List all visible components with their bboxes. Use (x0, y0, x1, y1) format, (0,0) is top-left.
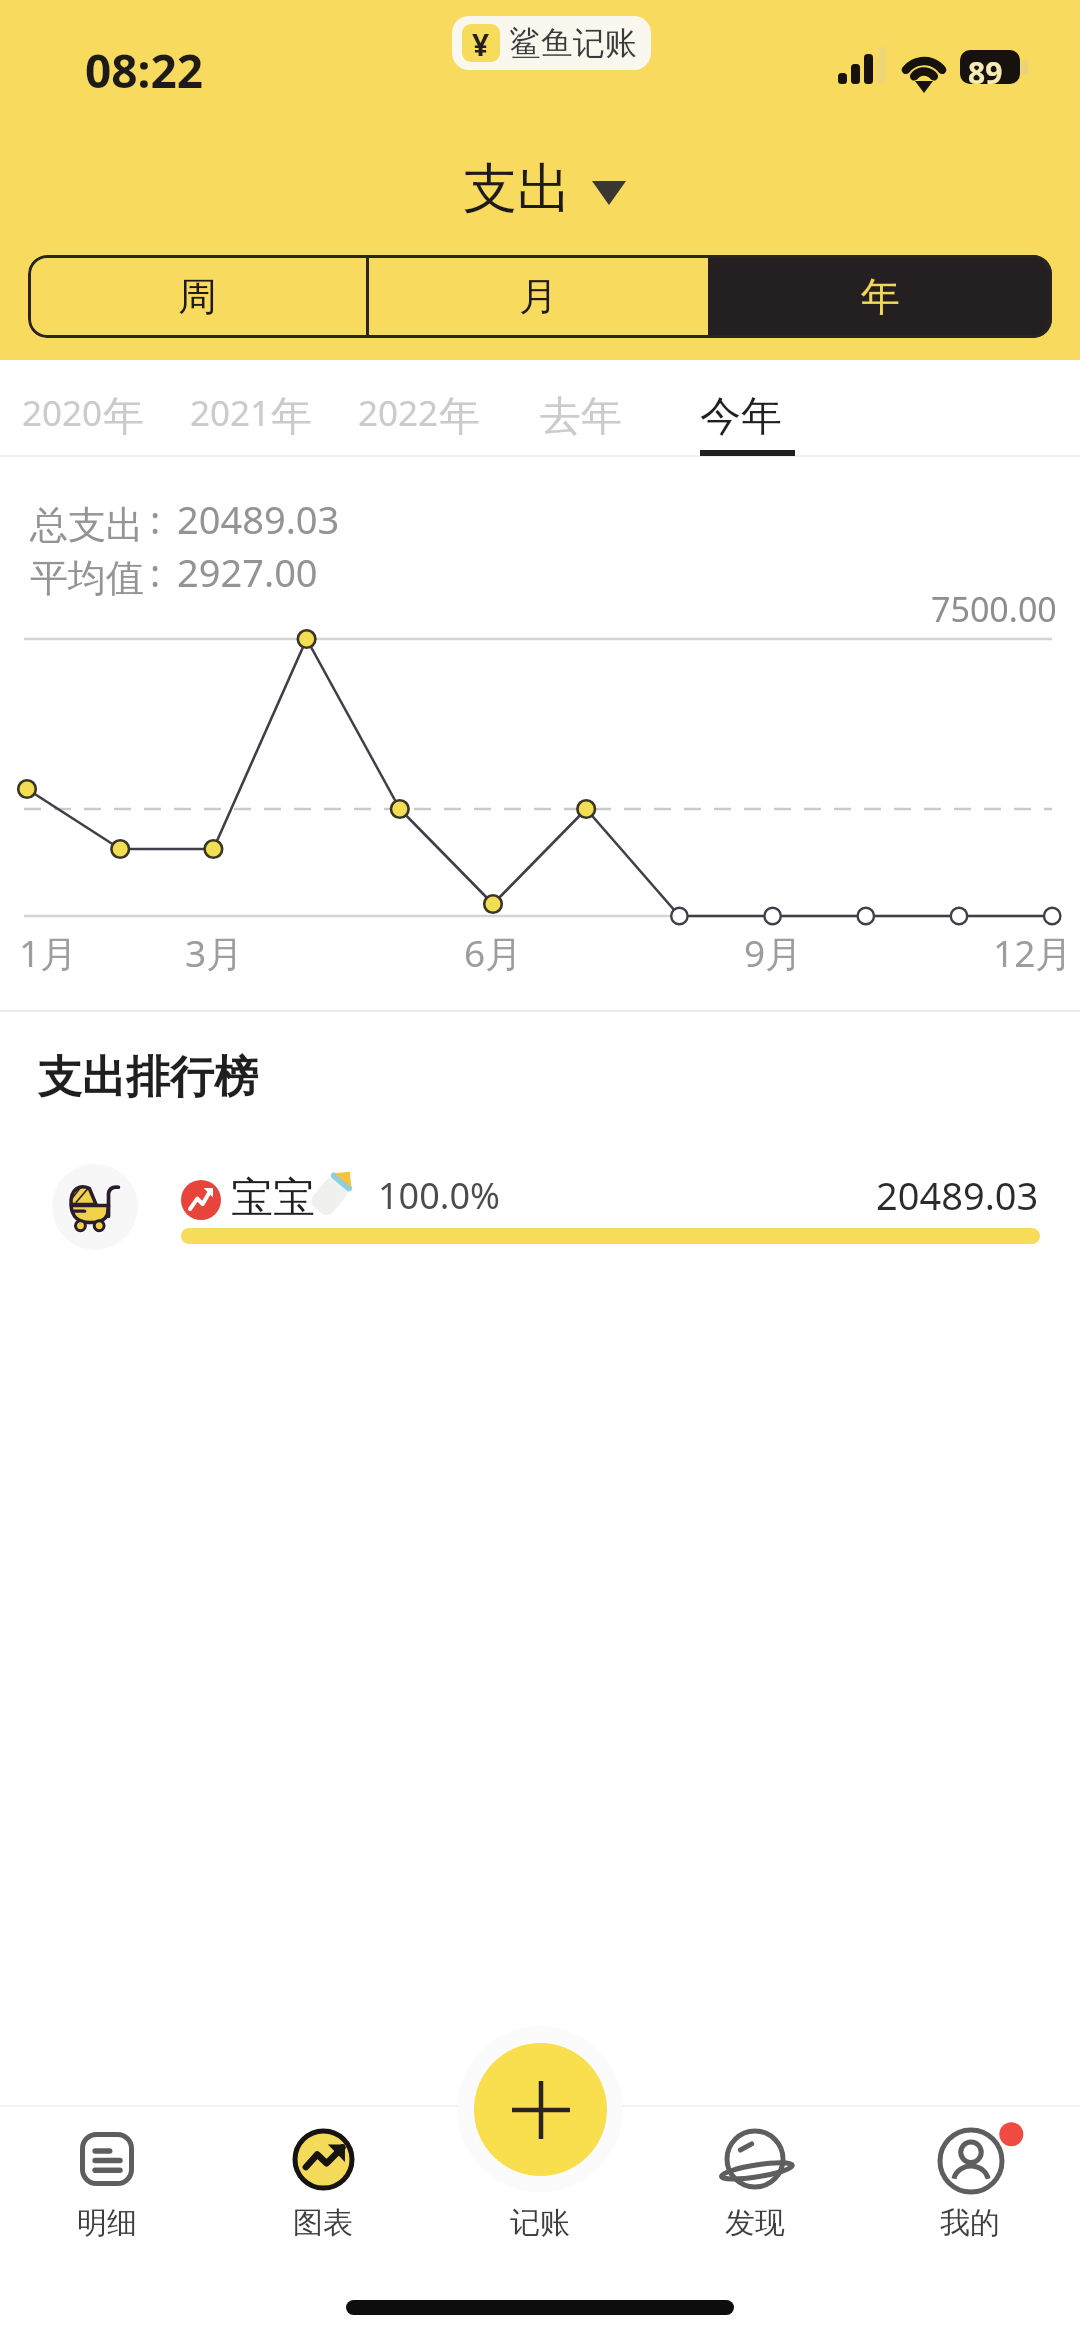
button[interactable]: 支出 (455, 150, 634, 230)
button[interactable]: 2020 (0, 366, 168, 468)
staticText: 12月 (993, 927, 1073, 978)
staticText: 我的 (940, 2204, 1000, 2242)
staticText: 2020 (22, 389, 103, 437)
button[interactable]: Add record (474, 2043, 607, 2176)
staticText: 100.0% (378, 1171, 500, 1220)
staticText: 年 (861, 272, 900, 321)
staticText: 平均值 (30, 554, 144, 602)
staticText: : (150, 546, 161, 598)
staticText: 20489.03 (177, 493, 340, 545)
staticText: 年 (439, 391, 480, 443)
button[interactable]: 年 (708, 255, 1052, 338)
staticText: 2021 (190, 389, 271, 437)
staticText: 周 (178, 272, 217, 321)
staticText: ¥ (472, 24, 490, 62)
staticText: 记账 (510, 2204, 570, 2242)
staticText: 7500.00 (931, 586, 1057, 632)
staticText: 20489.03 (876, 1169, 1039, 1221)
staticText: 6月 (464, 927, 523, 978)
staticText: 宝宝 (231, 1172, 315, 1225)
button[interactable]: 月 (369, 255, 708, 338)
staticText: 08:22 (85, 39, 204, 102)
staticText: 年 (103, 391, 144, 443)
staticText: 月 (519, 272, 558, 321)
staticText: 2022 (358, 389, 439, 437)
staticText: 总支出 (30, 501, 144, 549)
button[interactable]: 2021 (166, 366, 336, 468)
staticText: 今年 (700, 391, 782, 443)
staticText: 3月 (185, 927, 244, 978)
button[interactable]: 周 (28, 255, 366, 338)
button[interactable]: 2022 (334, 366, 504, 468)
button[interactable]: 我的 (870, 2112, 1070, 2248)
staticText: : (150, 493, 161, 545)
staticText: 明细 (77, 2204, 137, 2242)
staticText: 发现 (725, 2204, 785, 2242)
button[interactable]: 记账 (440, 2112, 640, 2248)
staticText: 支出排行榜 (38, 1050, 258, 1105)
button[interactable]: 图表 (223, 2112, 423, 2248)
staticText: 鲨鱼记账 (509, 23, 637, 63)
staticText: 2927.00 (177, 546, 318, 598)
button[interactable]: 去年 (516, 366, 646, 468)
staticText: 支出 (463, 155, 571, 223)
staticText: 去年 (540, 391, 622, 443)
button[interactable]: 发现 (655, 2112, 855, 2248)
staticText: 89 (968, 52, 1003, 93)
button[interactable]: 宝宝 (0, 1150, 1080, 1266)
staticText: 年 (271, 391, 312, 443)
staticText: 1月 (19, 927, 78, 978)
button[interactable]: 今年 (676, 366, 819, 468)
button[interactable]: 明细 (7, 2112, 207, 2248)
staticText: 图表 (293, 2204, 353, 2242)
staticText: 9月 (744, 927, 803, 978)
